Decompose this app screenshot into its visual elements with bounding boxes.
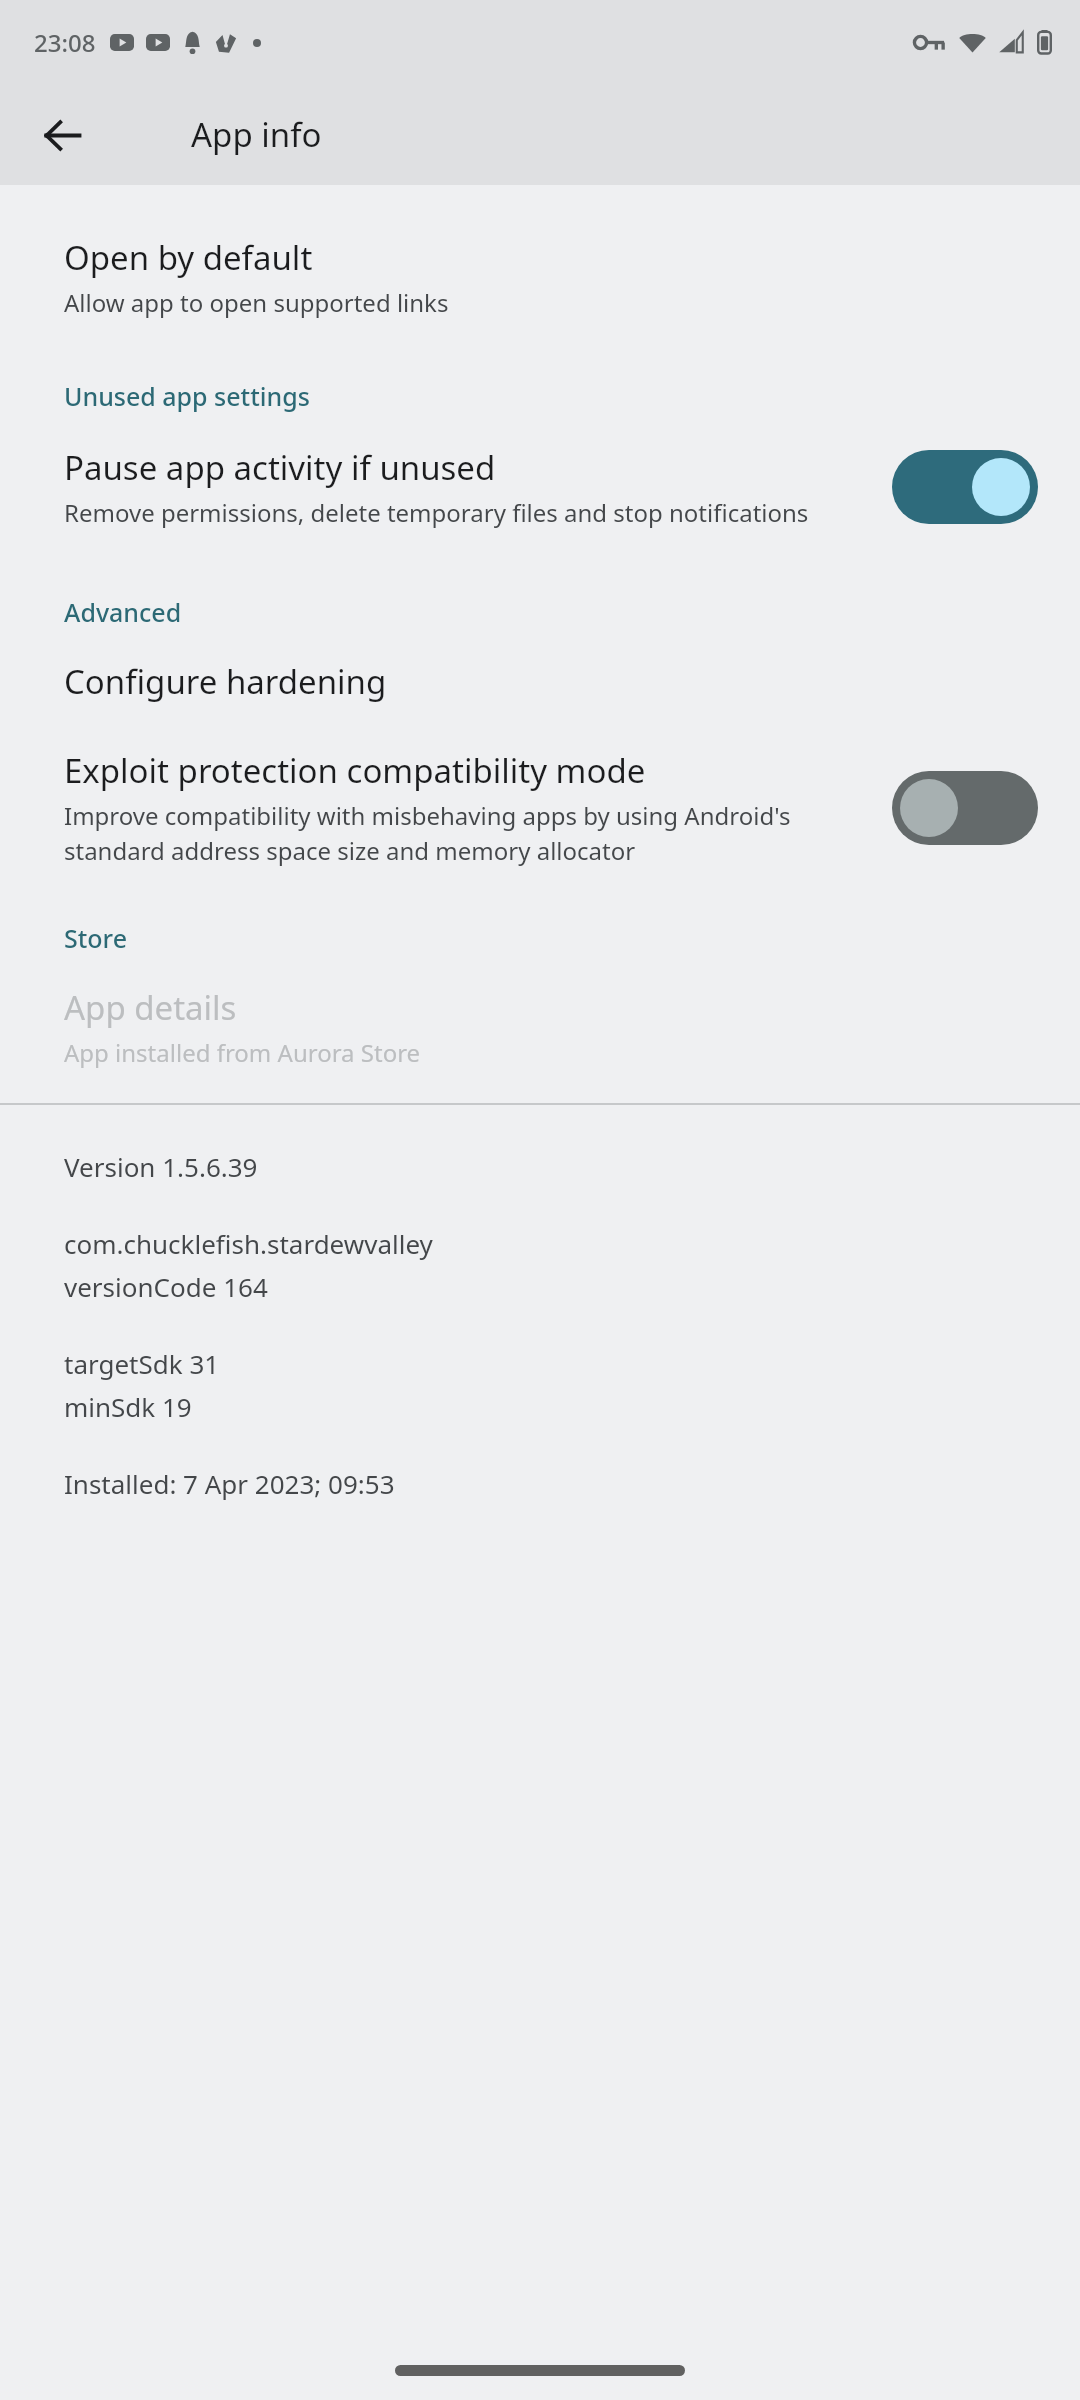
staticText: App installed from Aurora Store — [64, 1036, 421, 1069]
staticText: Improve compatibility with misbehaving a… — [64, 799, 866, 867]
staticText: com.chucklefish.stardewvalley versionCod… — [64, 1226, 433, 1304]
staticText: Unused app settings — [64, 379, 310, 413]
staticText: Configure hardening — [64, 659, 387, 704]
button[interactable]: Enabled — [892, 450, 1038, 524]
button[interactable]: Pause app activity if unused — [0, 441, 1080, 533]
staticText: Store — [64, 921, 128, 955]
staticText: Installed: 7 Apr 2023; 09:53 — [64, 1466, 395, 1501]
staticText: Exploit protection compatibility mode — [64, 748, 646, 793]
staticText: Open by default — [64, 235, 313, 280]
button[interactable]: App details — [0, 981, 1080, 1073]
button[interactable]: Exploit protection compatibility mode — [0, 744, 1080, 871]
staticText: targetSdk 31 minSdk 19 — [64, 1346, 220, 1424]
staticText: Advanced — [64, 595, 182, 629]
staticText: Remove permissions, delete temporary fil… — [64, 496, 809, 529]
staticText: Version 1.5.6.39 — [64, 1149, 258, 1184]
staticText: Pause app activity if unused — [64, 445, 496, 490]
button[interactable]: Back — [24, 97, 100, 173]
staticText: Allow app to open supported links — [64, 286, 449, 319]
staticText: App info — [191, 112, 322, 157]
button[interactable]: Configure hardening — [0, 655, 1080, 708]
button[interactable]: Open by default — [0, 231, 1080, 323]
staticText: App details — [64, 985, 237, 1030]
button[interactable]: Disabled — [892, 771, 1038, 845]
staticText: 23:08 — [34, 26, 96, 59]
